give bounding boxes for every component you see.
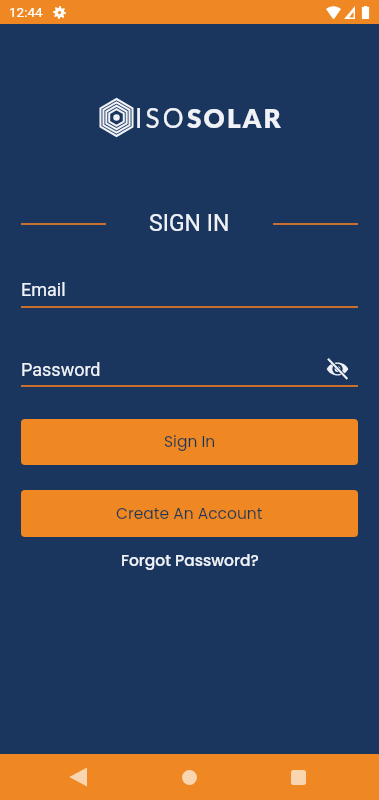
button[interactable]: Back [55,754,103,800]
staticText: Password [21,359,101,380]
button[interactable]: Show password [322,358,352,380]
staticText: SIGN IN [149,210,230,234]
staticText: 12:44 [9,4,43,20]
staticText: Email [21,279,66,300]
staticText: Sign In [164,431,216,453]
button[interactable]: Home [165,754,213,800]
staticText: SOLAR [187,102,283,133]
button[interactable]: Create An Account [21,490,358,537]
button[interactable]: Recent apps [274,754,322,800]
staticText: ISO [135,102,187,133]
staticText: Forgot Password? [121,550,259,572]
button[interactable]: Sign In [21,419,358,465]
button[interactable]: Forgot Password? [121,550,259,572]
staticText: Create An Account [116,503,263,525]
